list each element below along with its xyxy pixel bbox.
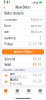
staticText: Profile bbox=[38, 93, 43, 95]
staticText: Browse bbox=[14, 93, 20, 95]
staticText: $5.20 bbox=[33, 80, 42, 83]
button[interactable]: Item bbox=[2, 23, 44, 29]
button[interactable]: Profile bbox=[34, 87, 46, 96]
button[interactable]: Submit Order bbox=[2, 49, 44, 54]
button[interactable]: Quantity bbox=[2, 35, 44, 41]
staticText: $9.10 bbox=[33, 63, 42, 66]
staticText: New Order bbox=[15, 6, 30, 9]
staticText: Order details bbox=[4, 12, 23, 15]
button[interactable]: Size bbox=[2, 29, 44, 35]
staticText: RECENT ORDERS bbox=[3, 68, 24, 72]
staticText: Size bbox=[4, 30, 9, 34]
staticText: Mocha bbox=[10, 78, 18, 82]
button[interactable]: Orders bbox=[23, 87, 34, 96]
staticText: Total bbox=[4, 63, 11, 66]
staticText: $8.40 bbox=[33, 57, 42, 61]
staticText: Quantity bbox=[4, 36, 15, 40]
staticText: Item bbox=[4, 24, 10, 28]
staticText: Medium bbox=[31, 30, 42, 34]
staticText: $4.50 bbox=[33, 74, 42, 77]
staticText: Home bbox=[4, 93, 8, 95]
staticText: Yesterday bbox=[10, 82, 22, 85]
staticText: Subtotal bbox=[4, 57, 15, 61]
button[interactable]: Latte bbox=[2, 72, 44, 78]
button[interactable]: Home bbox=[0, 87, 11, 96]
button[interactable]: Mocha bbox=[2, 79, 44, 85]
button[interactable]: Pickup bbox=[2, 41, 44, 47]
staticText: Pickup bbox=[4, 42, 13, 46]
staticText: Latte bbox=[10, 72, 16, 75]
staticText: Today 09:12 bbox=[10, 76, 27, 79]
staticText: Espresso bbox=[31, 24, 42, 28]
staticText: 2 bbox=[40, 36, 42, 40]
staticText: Customer bbox=[4, 18, 17, 21]
button[interactable]: Customer bbox=[2, 17, 44, 23]
staticText: 9:41 bbox=[3, 1, 10, 4]
button[interactable]: Browse bbox=[11, 87, 23, 96]
staticText: Alex Kim bbox=[31, 18, 42, 21]
staticText: Orders bbox=[26, 93, 32, 95]
staticText: 12:30 PM bbox=[28, 42, 42, 46]
button[interactable]: Back bbox=[2, 5, 7, 10]
staticText: Submit Order bbox=[13, 50, 32, 54]
